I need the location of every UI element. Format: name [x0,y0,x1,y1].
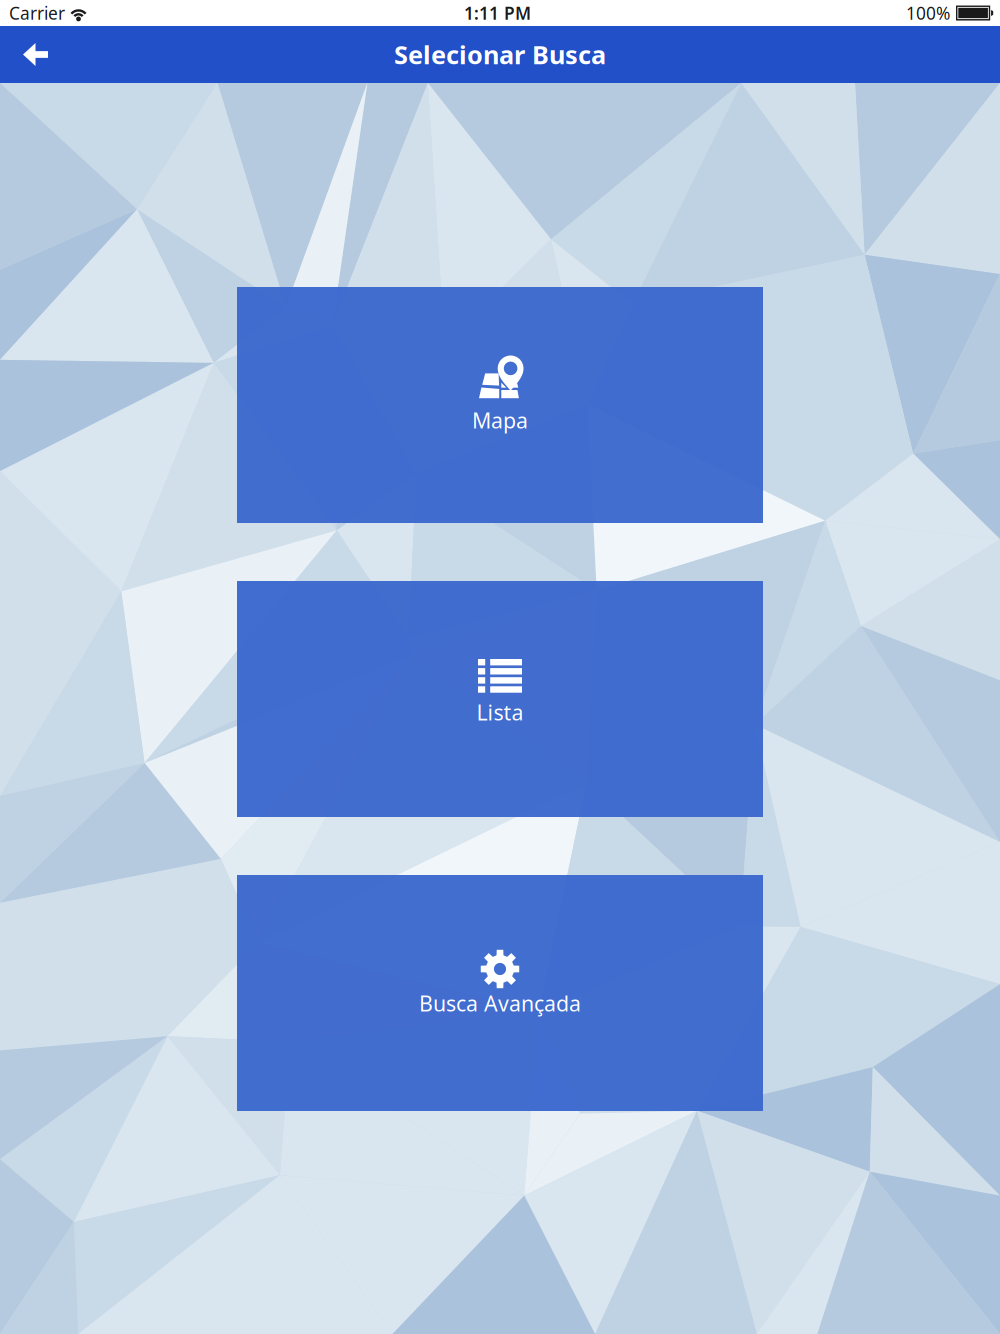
staticText: 100% [906,1,950,24]
staticText: Carrier [9,1,65,24]
button[interactable]: Lista [237,581,763,817]
staticText: Selecionar Busca [394,38,606,71]
staticText: 1:11 PM [464,1,531,24]
staticText: Busca Avançada [419,989,581,1017]
button[interactable]: Back [0,26,71,83]
button[interactable]: Mapa [237,287,763,523]
staticText: Mapa [472,406,528,434]
staticText: Lista [476,698,523,726]
button[interactable]: Busca Avançada [237,875,763,1111]
